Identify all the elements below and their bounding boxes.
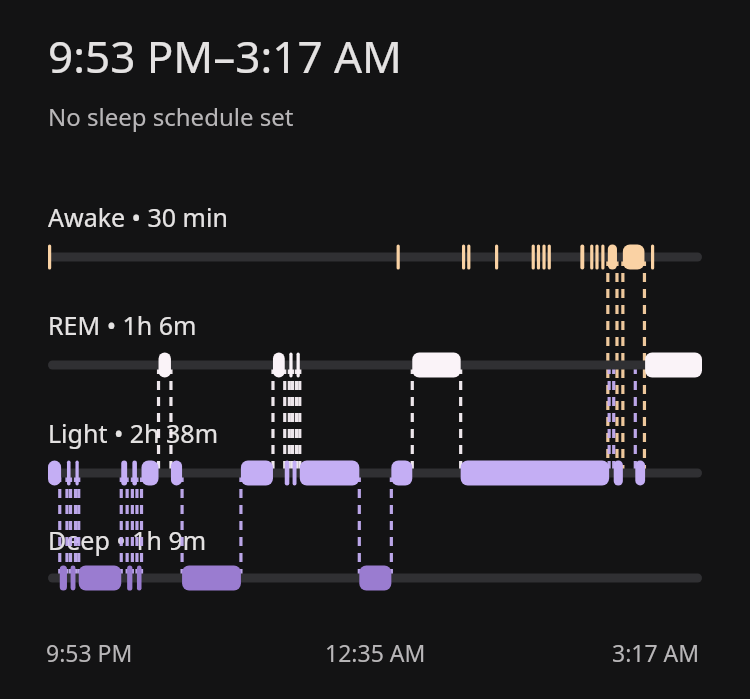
staticText: 9:53 PM bbox=[46, 637, 133, 668]
button[interactable]: REM • 1h 6m bbox=[48, 308, 197, 342]
button[interactable]: Light • 2h 38m bbox=[48, 416, 219, 450]
button[interactable]: Awake • 30 min bbox=[48, 200, 228, 234]
button[interactable]: Deep • 1h 9m bbox=[48, 523, 207, 557]
staticText: No sleep schedule set bbox=[48, 100, 294, 133]
staticText: 3:17 AM bbox=[612, 637, 700, 668]
staticText: 9:53 PM–3:17 AM bbox=[48, 26, 403, 86]
staticText: 12:35 AM bbox=[325, 637, 426, 668]
button[interactable]: Sleep stages chart bbox=[0, 0, 750, 699]
